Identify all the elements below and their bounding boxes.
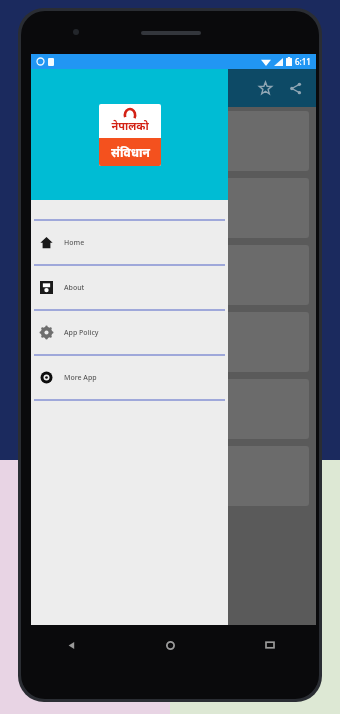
button[interactable]: Share [280, 73, 310, 103]
button[interactable]: About [31, 266, 228, 309]
button[interactable]: भाग–२ नागरिकता अन्तिम [35, 245, 309, 305]
button[interactable]: Recent apps [220, 625, 319, 665]
button[interactable]: Back [21, 625, 121, 665]
staticText: App Policy [64, 328, 99, 338]
staticText: संविधान [111, 144, 150, 160]
button[interactable]: App Policy [31, 311, 228, 354]
button[interactable]: भाग–५ राज्यको संरचना र राज्यशक्ति [35, 446, 309, 506]
button[interactable]: Favourite [250, 73, 280, 103]
button[interactable]: भाग–४ राज्यका नीति तथा दायित्व [35, 379, 309, 439]
staticText: Home [64, 238, 85, 248]
button[interactable]: More App [31, 356, 228, 399]
staticText: More App [64, 373, 97, 383]
button[interactable]: Home [31, 221, 228, 264]
staticText: भाग–३ मौलिक हक र निर्देशक सिद्धान्त, [43, 336, 170, 348]
staticText: 6:11 [295, 56, 311, 67]
button[interactable]: Home [121, 625, 220, 665]
staticText: नेपालको [111, 118, 149, 133]
staticText: About [64, 283, 85, 293]
button[interactable]: भाग–१ परिभाषा [35, 178, 309, 238]
button[interactable]: भाग–३ मौलिक हक र निर्देशक सिद्धान्त, [35, 312, 309, 372]
button[interactable]: प्रस्तावना [35, 111, 309, 171]
